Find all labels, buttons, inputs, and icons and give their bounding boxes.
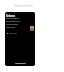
button[interactable]: Inbox: [5, 12, 35, 66]
staticText: Material Dark: [14, 4, 34, 8]
staticText: Inbox: [6, 14, 16, 18]
